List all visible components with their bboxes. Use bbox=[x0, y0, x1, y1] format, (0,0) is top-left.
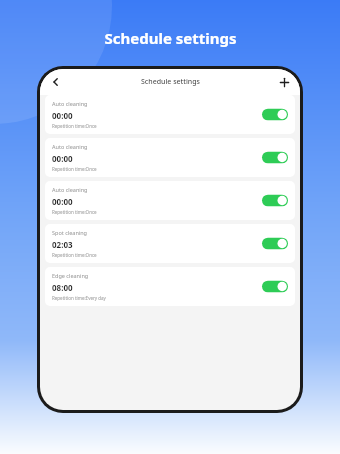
staticText: Repetition time:Once bbox=[52, 123, 97, 129]
button[interactable]: Toggle Spot cleaning bbox=[262, 236, 288, 251]
button[interactable]: Toggle Edge cleaning bbox=[262, 279, 288, 294]
staticText: Auto cleaning bbox=[52, 100, 88, 107]
button[interactable]: Add schedule bbox=[274, 72, 294, 92]
button[interactable]: Edge cleaning bbox=[45, 267, 295, 306]
staticText: Spot cleaning bbox=[52, 229, 87, 236]
staticText: 08:00 bbox=[52, 282, 73, 293]
staticText: Repetition time:Once bbox=[52, 209, 97, 215]
staticText: 00:00 bbox=[52, 196, 73, 207]
staticText: 00:00 bbox=[52, 110, 73, 121]
staticText: 00:00 bbox=[52, 153, 73, 164]
button[interactable]: Toggle Auto cleaning bbox=[262, 150, 288, 165]
staticText: Auto cleaning bbox=[52, 143, 88, 150]
staticText: Repetition time:Once bbox=[52, 252, 97, 258]
staticText: Schedule settings bbox=[104, 28, 237, 48]
button[interactable]: Toggle Auto cleaning bbox=[262, 193, 288, 208]
staticText: Schedule settings bbox=[141, 77, 200, 87]
staticText: Repetition time:Once bbox=[52, 166, 97, 172]
button[interactable]: Toggle Auto cleaning bbox=[262, 107, 288, 122]
button[interactable]: Spot cleaning bbox=[45, 224, 295, 263]
staticText: Edge cleaning bbox=[52, 272, 89, 279]
staticText: Repetition time:Every day bbox=[52, 295, 106, 301]
button[interactable]: Auto cleaning bbox=[45, 138, 295, 177]
staticText: 02:03 bbox=[52, 239, 73, 250]
button[interactable]: Auto cleaning bbox=[45, 95, 295, 134]
staticText: Auto cleaning bbox=[52, 186, 88, 193]
button[interactable]: Auto cleaning bbox=[45, 181, 295, 220]
button[interactable]: Back bbox=[46, 72, 66, 92]
